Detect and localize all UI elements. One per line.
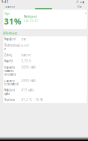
button[interactable]: Vše xyxy=(77,5,88,9)
staticText: Baterie xyxy=(5,5,15,9)
button[interactable]: Zdroj xyxy=(3,52,87,58)
staticText: Kapacita (Maxim.) současná xyxy=(4,66,15,76)
button[interactable]: Napětí xyxy=(3,58,87,64)
staticText: 413 cyklů xyxy=(21,89,34,92)
staticText: Vše xyxy=(77,5,82,9)
staticText: 31% xyxy=(4,16,21,27)
staticText: Nyní xyxy=(4,12,10,16)
staticText: Zdroj xyxy=(4,53,12,57)
staticText: 3,79 V xyxy=(21,59,31,63)
staticText: Napájení xyxy=(4,37,16,41)
button[interactable]: Teplota xyxy=(3,97,87,103)
staticText: 31,2 °C · 18 W xyxy=(21,98,42,102)
staticText: Technologie xyxy=(4,44,21,51)
staticText: ıl ⊿ ▮ xyxy=(76,0,83,4)
staticText: Informace xyxy=(3,32,18,35)
staticText: 2880 mAh xyxy=(21,79,36,82)
button[interactable]: Nabíjecí cyklů xyxy=(3,87,87,97)
staticText: Nabíjení xyxy=(24,15,37,18)
button[interactable]: Capacity (estimated) xyxy=(3,78,87,87)
staticText: Teplota xyxy=(4,98,14,102)
staticText: Li-ion xyxy=(21,44,29,47)
button[interactable]: Kapacita (Maxim.) současná xyxy=(3,64,87,78)
staticText: Capacity (estimated) xyxy=(4,79,19,86)
staticText: Napětí xyxy=(4,59,13,63)
staticText: Čas: 23:41 xyxy=(24,19,39,22)
button[interactable]: Baterie xyxy=(0,5,15,9)
staticText: Baterie xyxy=(21,53,31,57)
button[interactable]: Technologie xyxy=(3,42,87,52)
button[interactable]: Napájení xyxy=(3,36,87,42)
staticText: USB xyxy=(21,37,26,41)
staticText: 3000 mAh xyxy=(21,66,36,69)
staticText: 9:41 xyxy=(1,0,8,4)
staticText: Nabíjecí cyklů xyxy=(4,89,15,96)
